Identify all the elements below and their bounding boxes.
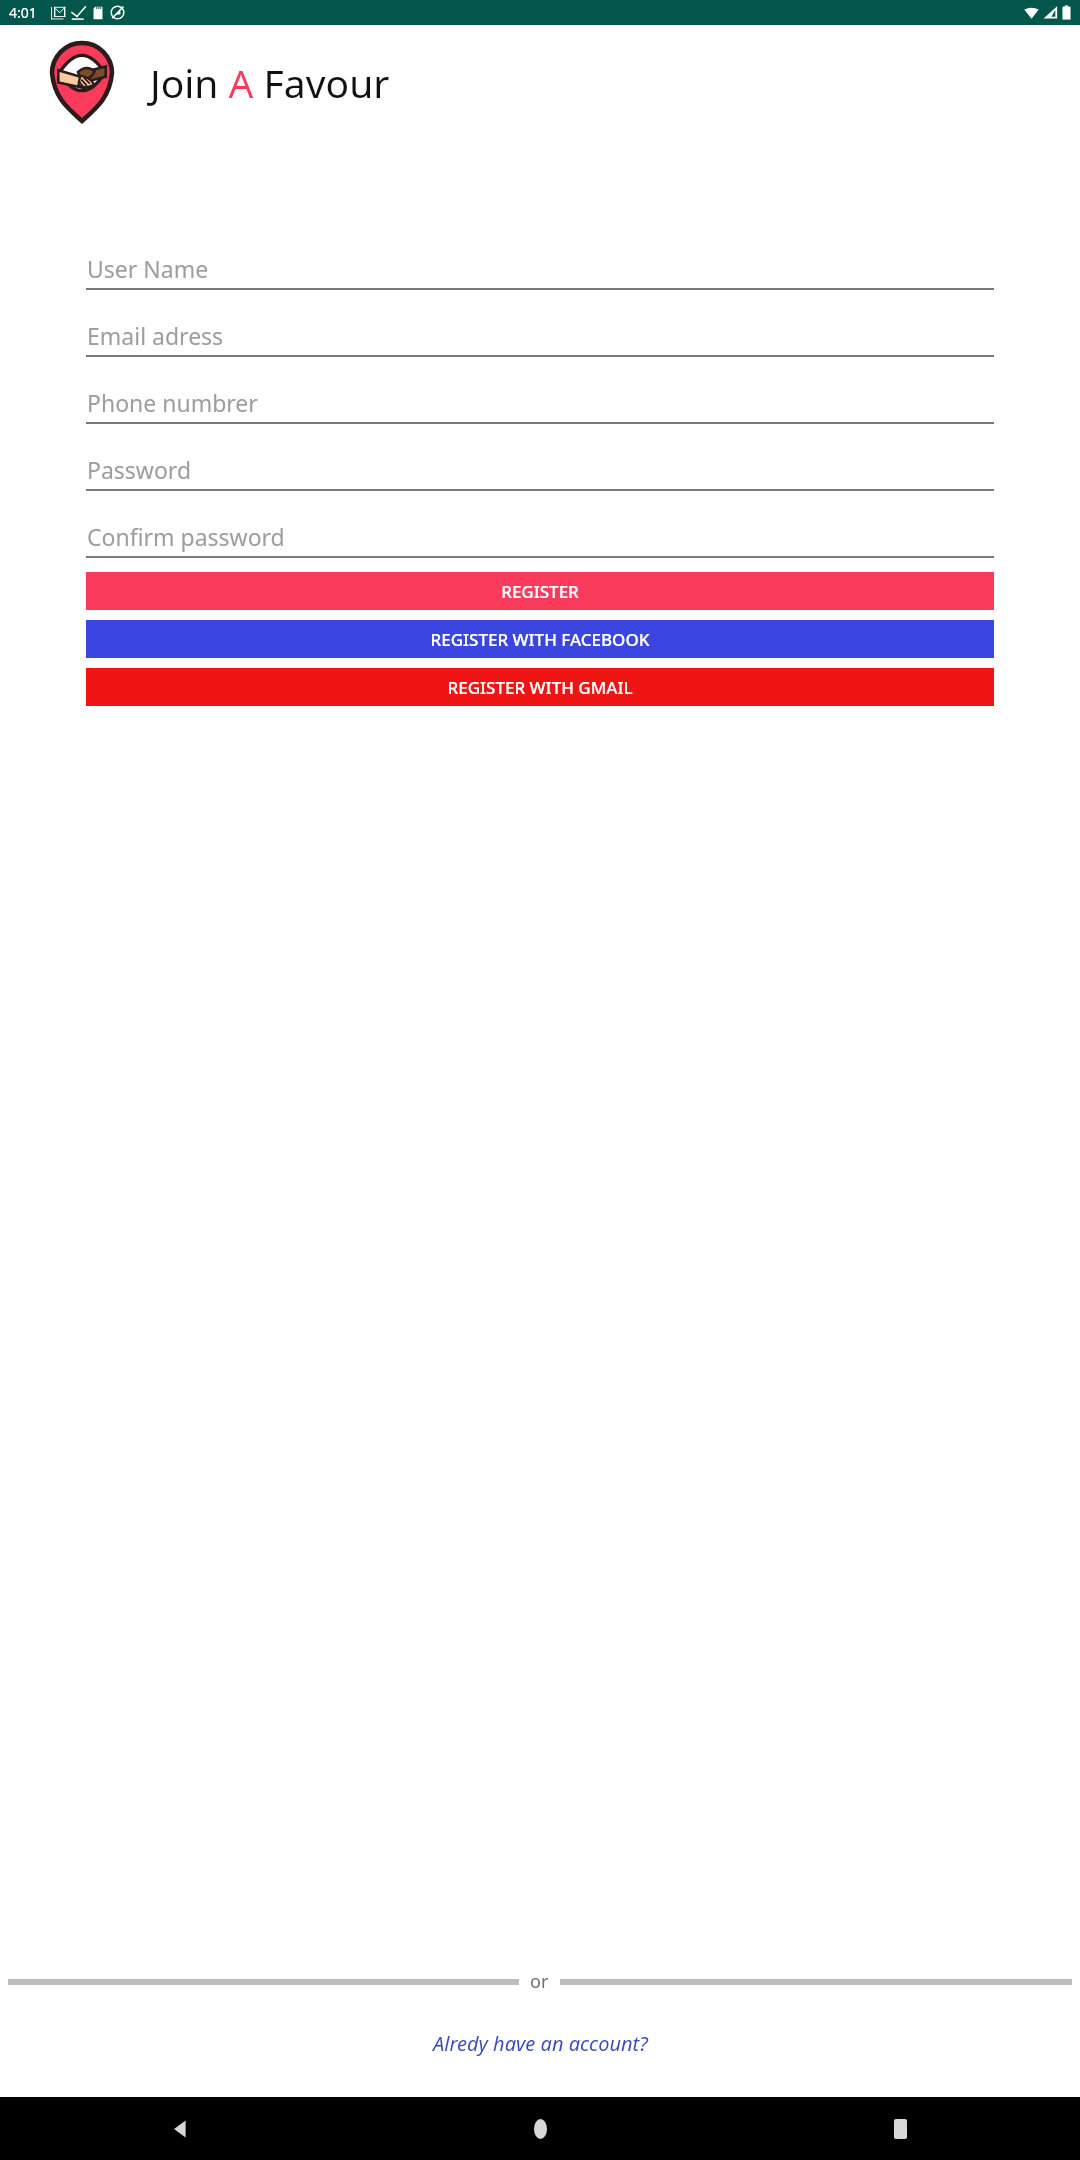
staticText: or [530,1969,549,1994]
button[interactable]: Home [360,2097,720,2160]
button[interactable]: REGISTER [86,572,994,610]
button[interactable]: User Name [86,253,994,290]
staticText: Password [87,454,192,485]
button[interactable]: REGISTER WITH GMAIL [86,668,994,706]
button[interactable]: Email adress [86,320,994,357]
button[interactable]: Phone numbrer [86,387,994,424]
staticText: Phone numbrer [87,387,258,418]
button[interactable]: Alredy have an account? [421,2024,660,2063]
staticText: 4:01 [9,3,37,22]
button[interactable]: REGISTER WITH FACEBOOK [86,620,994,658]
button[interactable]: Recent apps [720,2097,1080,2160]
button[interactable]: Back [0,2097,360,2160]
staticText: REGISTER WITH FACEBOOK [430,628,650,651]
button[interactable]: Password [86,454,994,491]
staticText: Confirm password [87,521,285,552]
staticText: Email adress [87,320,224,351]
staticText: User Name [87,253,209,284]
staticText: REGISTER WITH GMAIL [447,676,633,699]
staticText: REGISTER [501,580,579,603]
button[interactable]: Confirm password [86,521,994,558]
staticText: Join A Favour [150,56,390,109]
